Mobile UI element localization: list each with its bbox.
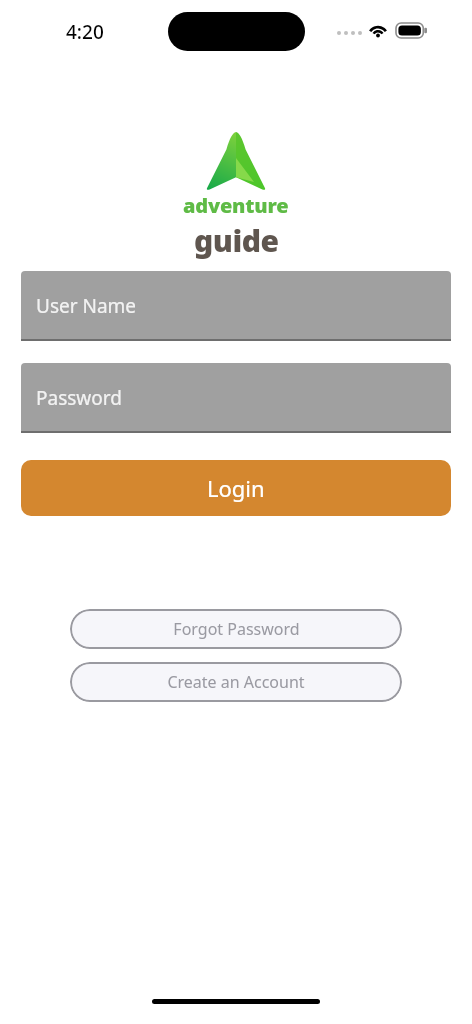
staticText: Login (207, 473, 265, 503)
staticText: Password (36, 385, 122, 411)
button[interactable]: Password (21, 363, 451, 433)
button[interactable]: Create an Account (70, 662, 402, 702)
button[interactable]: Forgot Password (70, 609, 402, 649)
staticText: 4:20 (66, 19, 104, 45)
button[interactable]: User Name (21, 271, 451, 341)
staticText: adventure (183, 192, 289, 219)
staticText: Forgot Password (173, 618, 300, 640)
button[interactable]: Login (21, 460, 451, 516)
staticText: Create an Account (167, 671, 305, 693)
staticText: User Name (36, 293, 137, 319)
staticText: guide (194, 220, 279, 261)
